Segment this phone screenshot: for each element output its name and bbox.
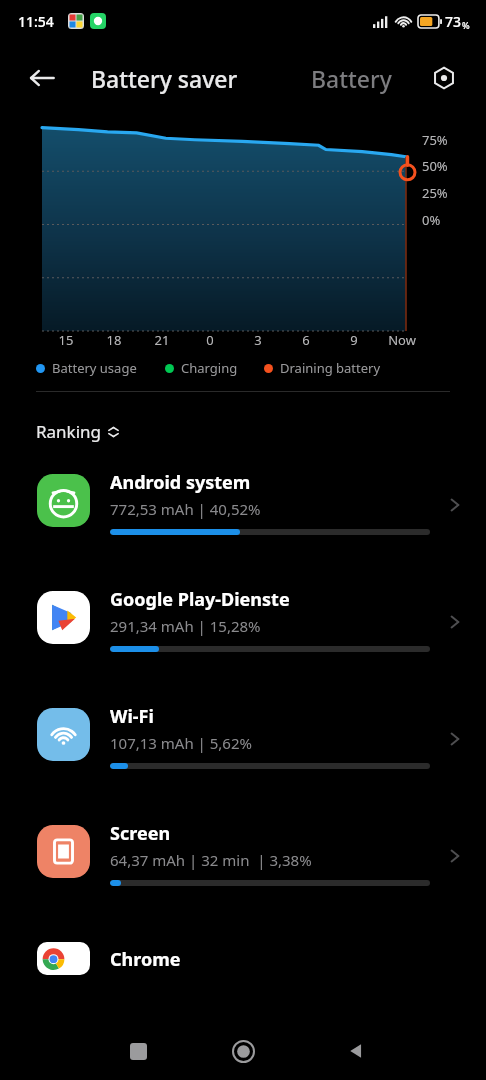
staticText: Wi-Fi [110, 704, 154, 729]
staticText: 3 [234, 331, 282, 349]
staticText: 6 [282, 331, 330, 349]
button[interactable]: Android system [0, 465, 486, 582]
staticText: 50% [422, 157, 448, 175]
button[interactable]: Chrome [0, 933, 486, 975]
button[interactable]: Charging [165, 359, 238, 377]
staticText: 0 [186, 331, 234, 349]
staticText: 15 [42, 331, 90, 349]
button[interactable]: Back [336, 1031, 376, 1071]
staticText: 18 [90, 331, 138, 349]
button[interactable]: Back [22, 58, 62, 98]
staticText: 0% [422, 211, 441, 229]
staticText: Charging [181, 359, 238, 377]
staticText: 9 [330, 331, 378, 349]
button[interactable]: Wi-Fi [0, 699, 486, 816]
staticText: Now [378, 331, 426, 349]
button[interactable]: Screen [0, 816, 486, 933]
staticText: Google Play-Dienste [110, 587, 290, 612]
staticText: Chrome [110, 947, 181, 972]
button[interactable]: Google Play-Dienste [0, 582, 486, 699]
button[interactable]: Home [222, 1030, 264, 1072]
staticText: 25% [422, 184, 448, 202]
button[interactable]: Ranking [36, 420, 119, 443]
staticText: 64,37 mAh | 32 min | 3,38% [110, 850, 312, 870]
staticText: % [462, 19, 470, 31]
button[interactable]: Recents [118, 1031, 158, 1071]
button[interactable]: Battery usage [36, 359, 137, 377]
button[interactable]: Draining battery [264, 359, 381, 377]
staticText: Android system [110, 470, 251, 495]
staticText: Battery usage [52, 359, 137, 377]
staticText: Draining battery [280, 359, 381, 377]
staticText: Screen [110, 821, 171, 846]
button[interactable]: Battery saver [91, 63, 238, 94]
staticText: 11:54 [18, 12, 54, 31]
button[interactable]: Battery [311, 63, 392, 94]
staticText: Ranking [36, 420, 102, 443]
staticText: 73 [445, 12, 462, 31]
staticText: 291,34 mAh | 15,28% [110, 616, 261, 636]
staticText: 772,53 mAh | 40,52% [110, 499, 261, 519]
staticText: 21 [138, 331, 186, 349]
button[interactable]: Settings [426, 60, 462, 96]
staticText: 107,13 mAh | 5,62% [110, 733, 252, 753]
staticText: 75% [422, 131, 448, 149]
